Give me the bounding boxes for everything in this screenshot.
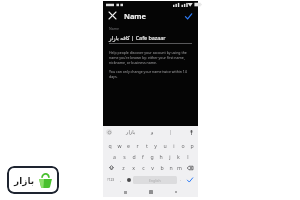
staticText: Name bbox=[109, 26, 120, 31]
button[interactable]: Symbols bbox=[116, 173, 124, 186]
button[interactable]: کافه بازار | Cafe bazaar bbox=[109, 34, 192, 41]
staticText: u bbox=[163, 142, 167, 149]
button[interactable]: c bbox=[138, 162, 148, 173]
button[interactable]: Shift bbox=[105, 162, 118, 173]
button[interactable]: l bbox=[183, 151, 192, 162]
staticText: n bbox=[169, 164, 173, 171]
staticText: . bbox=[180, 177, 182, 182]
button[interactable]: u bbox=[160, 140, 169, 151]
staticText: p bbox=[190, 142, 194, 149]
staticText: You can only change your name twice with… bbox=[109, 69, 192, 79]
staticText: s bbox=[123, 153, 126, 160]
button[interactable]: Bazaar bbox=[7, 166, 59, 194]
button[interactable]: a bbox=[109, 151, 119, 162]
staticText: بازار bbox=[14, 176, 35, 186]
button[interactable]: r bbox=[133, 140, 142, 151]
staticText: t bbox=[146, 142, 148, 149]
button[interactable]: k bbox=[174, 151, 183, 162]
staticText: کافه بازار | Cafe bazaar bbox=[109, 34, 166, 41]
staticText: l bbox=[187, 153, 189, 160]
button[interactable]: t bbox=[142, 140, 151, 151]
staticText: d bbox=[132, 153, 136, 160]
staticText: Name bbox=[124, 11, 146, 21]
button[interactable]: Backspace bbox=[184, 162, 196, 173]
button[interactable]: o bbox=[178, 140, 187, 151]
button[interactable]: p bbox=[187, 140, 196, 151]
staticText: b bbox=[160, 164, 164, 171]
button[interactable]: b bbox=[157, 162, 166, 173]
button[interactable]: z bbox=[118, 162, 128, 173]
button[interactable]: g bbox=[147, 151, 156, 162]
button[interactable]: Home bbox=[147, 188, 155, 196]
staticText: Help people discover your account by usi… bbox=[109, 50, 192, 65]
staticText: j bbox=[169, 153, 171, 160]
staticText: x bbox=[132, 164, 135, 171]
staticText: f bbox=[142, 153, 144, 160]
button[interactable]: h bbox=[156, 151, 165, 162]
button[interactable]: Voice input bbox=[187, 128, 195, 136]
button[interactable]: e bbox=[124, 140, 133, 151]
button[interactable]: Back bbox=[172, 188, 180, 196]
staticText: h bbox=[159, 153, 163, 160]
staticText: e bbox=[127, 142, 130, 149]
button[interactable]: Close bbox=[107, 10, 118, 21]
button[interactable]: v bbox=[148, 162, 157, 173]
button[interactable]: j bbox=[165, 151, 174, 162]
staticText: و bbox=[151, 129, 154, 135]
button[interactable]: ?123 bbox=[105, 173, 116, 186]
button[interactable]: Save bbox=[182, 10, 194, 22]
button[interactable]: q bbox=[105, 140, 115, 151]
staticText: k bbox=[177, 153, 180, 160]
staticText: r bbox=[136, 142, 139, 149]
button[interactable]: i bbox=[169, 140, 178, 151]
button[interactable]: y bbox=[151, 140, 160, 151]
staticText: m bbox=[177, 164, 182, 171]
staticText: q bbox=[108, 142, 112, 149]
staticText: | bbox=[169, 129, 172, 136]
staticText: w bbox=[117, 142, 122, 149]
staticText: a bbox=[113, 153, 116, 160]
button[interactable]: Enter bbox=[184, 173, 196, 186]
staticText: v bbox=[151, 164, 154, 171]
staticText: z bbox=[122, 164, 125, 171]
button[interactable]: m bbox=[175, 162, 184, 173]
button[interactable]: Language bbox=[124, 173, 133, 186]
button[interactable]: d bbox=[129, 151, 138, 162]
staticText: , bbox=[120, 177, 121, 182]
button[interactable]: f bbox=[138, 151, 147, 162]
button[interactable]: w bbox=[115, 140, 124, 151]
staticText: English bbox=[149, 178, 161, 183]
button[interactable]: s bbox=[119, 151, 129, 162]
staticText: g bbox=[150, 153, 154, 160]
staticText: i bbox=[173, 142, 175, 149]
staticText: ?123 bbox=[107, 177, 115, 182]
button[interactable]: Recents bbox=[121, 188, 129, 196]
staticText: o bbox=[181, 142, 185, 149]
staticText: بازار bbox=[126, 129, 136, 135]
button[interactable]: n bbox=[166, 162, 175, 173]
button[interactable]: Emoji settings bbox=[106, 129, 112, 135]
staticText: c bbox=[142, 164, 145, 171]
button[interactable]: x bbox=[128, 162, 138, 173]
button[interactable]: English bbox=[133, 176, 177, 184]
staticText: y bbox=[154, 142, 157, 149]
